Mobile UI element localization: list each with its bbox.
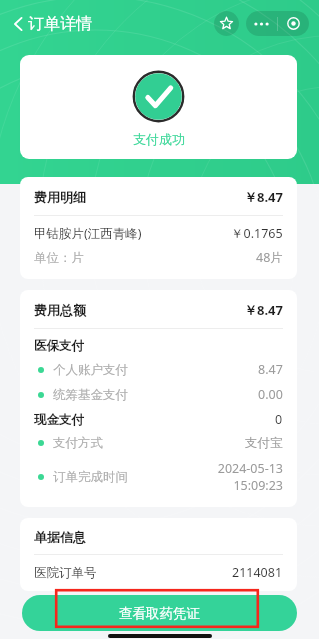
button[interactable]: Favorite xyxy=(214,11,239,36)
staticText: 8.47 xyxy=(258,361,283,378)
staticText: 2024-05-13 xyxy=(217,460,283,477)
staticText: 支付宝 xyxy=(245,435,283,451)
staticText: 查看取药凭证 xyxy=(119,605,200,622)
button[interactable]: Back xyxy=(9,10,96,38)
staticText: 15:09:23 xyxy=(233,477,283,494)
other: Back xyxy=(13,16,24,32)
staticText: 统筹基金支付 xyxy=(53,387,128,403)
button[interactable]: Close xyxy=(278,11,309,36)
staticText: 支付方式 xyxy=(53,435,103,451)
staticText: 医院订单号 xyxy=(34,565,97,581)
staticText: ￥0.1765 xyxy=(231,225,283,242)
staticText: 费用明细 xyxy=(34,189,86,205)
button[interactable]: 查看取药凭证 xyxy=(22,595,297,631)
staticText: 0.00 xyxy=(258,386,283,403)
staticText: 支付成功 xyxy=(133,131,185,147)
staticText: 0 xyxy=(275,411,283,428)
staticText: 甲钴胺片(江西青峰) xyxy=(34,225,142,242)
staticText: ￥8.47 xyxy=(244,301,283,319)
staticText: 2114081 xyxy=(232,564,283,581)
staticText: 48片 xyxy=(256,249,283,266)
staticText: ￥8.47 xyxy=(244,188,283,206)
button[interactable]: More xyxy=(246,11,277,36)
staticText: 单据信息 xyxy=(34,529,86,545)
staticText: 现金支付 xyxy=(34,412,84,428)
staticText: 费用总额 xyxy=(34,302,86,318)
staticText: 个人账户支付 xyxy=(53,362,128,378)
staticText: 订单详情 xyxy=(28,14,92,34)
staticText: 订单完成时间 xyxy=(53,469,128,485)
staticText: 单位：片 xyxy=(34,250,84,266)
staticText: 医保支付 xyxy=(34,338,84,354)
